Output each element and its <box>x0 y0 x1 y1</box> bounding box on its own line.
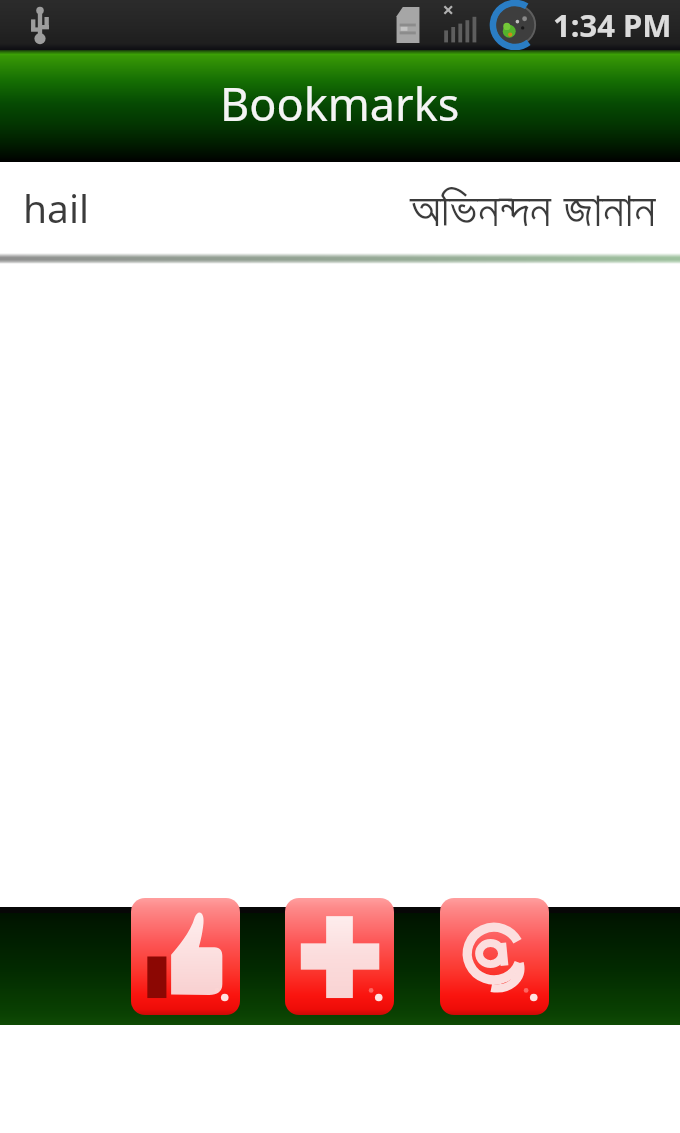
button[interactable]: Like <box>131 898 240 1015</box>
button[interactable]: hail <box>0 162 680 253</box>
button[interactable]: Email <box>440 898 549 1015</box>
staticText: Bookmarks <box>220 73 460 134</box>
staticText: 1:34 PM <box>553 4 672 46</box>
button[interactable]: Add <box>285 898 394 1015</box>
staticText: অভিনন্দন জানান <box>410 174 656 241</box>
staticText: hail <box>23 181 90 234</box>
